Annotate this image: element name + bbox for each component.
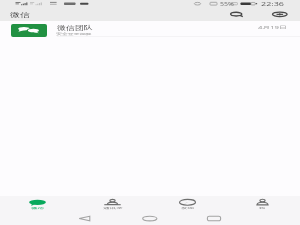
staticText: 微信 (10, 11, 30, 19)
button[interactable] (0, 21, 300, 39)
button[interactable] (150, 196, 225, 225)
button[interactable] (0, 196, 75, 225)
button[interactable]: Recents (199, 212, 229, 225)
staticText: 微信团队 (57, 24, 92, 32)
button[interactable]: Home (135, 212, 165, 225)
staticText: 通讯录 (103, 207, 123, 209)
staticText: 我 (259, 207, 266, 209)
button[interactable]: Add (269, 8, 291, 21)
staticText: 22:36 (261, 1, 284, 8)
button[interactable] (75, 196, 150, 225)
staticText: 55% (220, 1, 234, 7)
staticText: 4月19日 (258, 25, 287, 30)
staticText: 微信 (31, 207, 45, 209)
button[interactable]: Back (69, 212, 100, 225)
staticText: 安全登录提醒 (56, 32, 91, 36)
button[interactable]: Search (226, 8, 248, 21)
staticText: 发现 (181, 207, 195, 209)
button[interactable] (225, 196, 300, 225)
